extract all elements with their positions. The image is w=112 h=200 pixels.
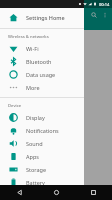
button[interactable]: Settings Home bbox=[0, 11, 84, 24]
button[interactable]: Apps bbox=[0, 150, 84, 163]
button[interactable]: Wi-Fi bbox=[0, 42, 84, 55]
staticText: Apps bbox=[26, 153, 39, 160]
button[interactable]: Search bbox=[88, 9, 99, 20]
staticText: More bbox=[26, 84, 40, 91]
button[interactable]: Battery bbox=[0, 176, 84, 189]
button[interactable]: Back bbox=[0, 185, 38, 200]
staticText: Bluetooth bbox=[26, 58, 52, 65]
button[interactable]: Sound bbox=[0, 137, 84, 150]
button[interactable]: Data usage bbox=[0, 68, 84, 81]
staticText: Display bbox=[26, 114, 45, 121]
staticText: Notifications bbox=[26, 127, 59, 134]
button[interactable]: More bbox=[0, 81, 84, 94]
button[interactable]: Display bbox=[0, 111, 84, 124]
staticText: Wireless & networks bbox=[8, 34, 49, 40]
button[interactable]: Recent apps bbox=[75, 185, 112, 200]
button[interactable]: More options bbox=[99, 9, 110, 20]
staticText: 00:14 bbox=[99, 2, 110, 7]
button[interactable]: Storage bbox=[0, 163, 84, 176]
staticText: Battery bbox=[26, 179, 45, 186]
staticText: Data usage bbox=[26, 71, 56, 78]
staticText: Wi-Fi bbox=[26, 45, 39, 52]
staticText: Sound bbox=[26, 140, 43, 147]
staticText: Storage bbox=[26, 166, 47, 173]
button[interactable]: Bluetooth bbox=[0, 55, 84, 68]
button[interactable]: Home bbox=[38, 185, 75, 200]
staticText: Settings Home bbox=[26, 14, 65, 21]
staticText: Device bbox=[8, 103, 22, 109]
button[interactable]: Notifications bbox=[0, 124, 84, 137]
